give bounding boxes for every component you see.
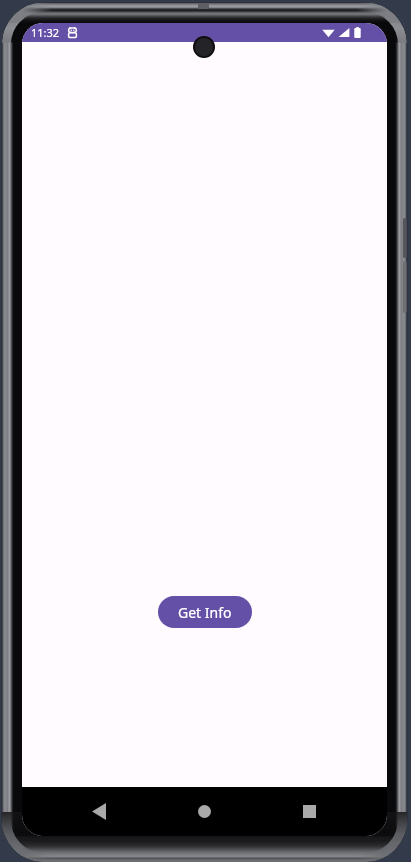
- staticText: 11:32: [31, 25, 60, 40]
- staticText: Get Info: [178, 603, 232, 622]
- button[interactable]: Back: [81, 793, 117, 829]
- button[interactable]: Home: [186, 793, 222, 829]
- button[interactable]: Get Info: [158, 596, 252, 628]
- button[interactable]: Recents: [291, 793, 327, 829]
